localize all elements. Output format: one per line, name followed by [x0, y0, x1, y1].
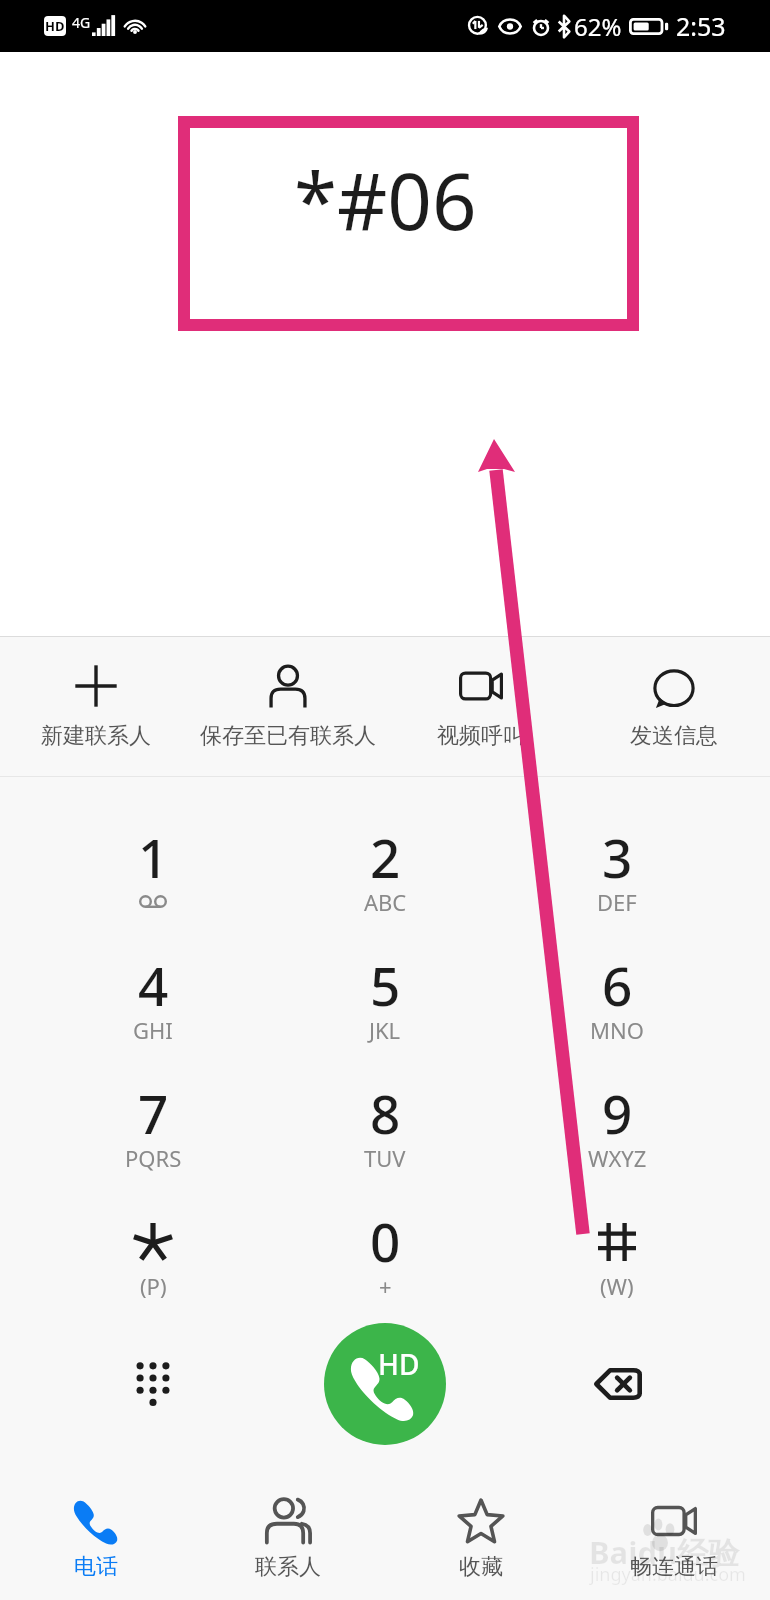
button[interactable]: 新建联系人 [0, 637, 192, 776]
staticText: 2:53 [676, 9, 726, 43]
staticText: 4G [72, 13, 91, 32]
staticText: 新建联系人 [41, 722, 151, 750]
button[interactable]: 9 [501, 1051, 733, 1179]
staticText: GHI [133, 1015, 173, 1045]
button[interactable]: 2 [269, 795, 501, 923]
staticText: (P) [140, 1271, 167, 1301]
staticText: 62% [574, 10, 622, 43]
staticText: WXYZ [588, 1143, 647, 1173]
staticText: 收藏 [459, 1553, 503, 1581]
button[interactable]: 收藏 [384, 1498, 577, 1600]
button[interactable]: 0 [269, 1179, 501, 1307]
staticText: 发送信息 [630, 722, 718, 750]
button[interactable]: 7 [37, 1051, 269, 1179]
staticText: PQRS [125, 1143, 182, 1173]
button[interactable]: Call [324, 1323, 446, 1445]
staticText: TUV [364, 1143, 406, 1173]
staticText: 2 [370, 821, 401, 893]
staticText: 6 [602, 949, 633, 1021]
staticText: *#06 [294, 147, 477, 253]
button[interactable]: 6 [501, 923, 733, 1051]
staticText: 5 [370, 949, 401, 1021]
staticText: 9 [602, 1077, 633, 1149]
staticText: (W) [600, 1271, 634, 1301]
staticText: HD [45, 17, 65, 35]
button[interactable]: 保存至已有联系人 [192, 637, 384, 776]
staticText: 3 [602, 821, 633, 893]
button[interactable]: 电话 [0, 1498, 192, 1600]
button[interactable]: 畅连通话 [577, 1498, 770, 1600]
button[interactable]: 1 [37, 795, 269, 923]
button[interactable]: 8 [269, 1051, 501, 1179]
button[interactable]: 视频呼叫 [384, 637, 577, 776]
button[interactable]: Backspace [501, 1307, 733, 1460]
staticText: + [379, 1271, 392, 1301]
staticText: 畅连通话 [630, 1553, 718, 1581]
staticText: 1 [138, 821, 169, 893]
staticText: MNO [590, 1015, 644, 1045]
staticText: DEF [597, 887, 637, 917]
button[interactable]: (P) [37, 1179, 269, 1307]
button[interactable]: 联系人 [192, 1498, 384, 1600]
staticText: 8 [370, 1077, 401, 1149]
staticText: Baidu经验 [589, 1531, 740, 1573]
staticText: 4 [138, 949, 169, 1021]
button[interactable]: Hide dialpad [37, 1307, 269, 1460]
button[interactable]: (W) [501, 1179, 733, 1307]
staticText: 电话 [74, 1553, 118, 1581]
staticText: jingyan.baidu.com [590, 1562, 746, 1587]
staticText: JKL [369, 1015, 401, 1045]
staticText: 7 [138, 1077, 169, 1149]
staticText: 视频呼叫 [437, 722, 525, 750]
button[interactable]: 5 [269, 923, 501, 1051]
staticText: HD [378, 1345, 420, 1383]
button[interactable]: 3 [501, 795, 733, 923]
button[interactable]: 发送信息 [577, 637, 770, 776]
staticText: ABC [364, 887, 407, 917]
staticText: 0 [370, 1205, 401, 1277]
staticText: 保存至已有联系人 [200, 722, 376, 750]
button[interactable]: 4 [37, 923, 269, 1051]
staticText: 联系人 [255, 1553, 321, 1581]
